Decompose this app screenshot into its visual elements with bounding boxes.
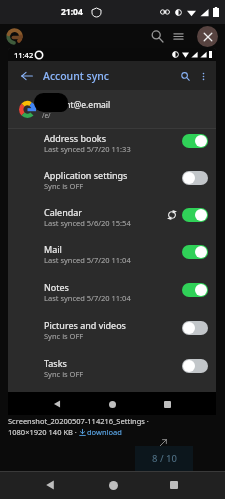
staticText: 1080×1920 140 KB · [8,427,79,437]
staticText: Last synced 5/7/20 11:33 [44,144,131,154]
button[interactable]: Menu [169,27,187,45]
button[interactable]: download [79,427,122,437]
staticText: Sync is OFF [44,331,84,341]
staticText: 11:42 [14,50,34,60]
staticText: Sync is OFF [44,181,84,191]
button[interactable]: Address books [8,129,216,166]
button[interactable]: Tasks [8,354,216,392]
button[interactable]: Sync off [182,359,208,373]
button[interactable]: Back [18,67,36,85]
staticText: Mail [44,243,62,255]
button[interactable]: 8 / 10 [135,446,193,471]
button[interactable]: Sync off [182,321,208,335]
button[interactable]: Sync off [182,171,208,185]
button[interactable]: account@e.email [8,90,216,128]
staticText: Notes [44,281,69,293]
staticText: Last synced 5/7/20 11:04 [44,255,131,265]
staticText: Calendar [44,206,82,218]
staticText: Screenshot_20200507-114216_Settings · [8,416,149,426]
staticText: Last synced 5/6/20 15:54 [44,218,131,228]
staticText: Sync is OFF [44,369,84,379]
staticText: download [87,427,122,437]
button[interactable]: Close tab [195,24,219,48]
button[interactable]: Mail [8,240,216,278]
staticText: Application settings [44,169,128,181]
button[interactable]: Sync on [182,245,208,259]
staticText: account@e.email [42,99,111,111]
button[interactable]: Sync on [182,283,208,297]
staticText: Last synced 5/7/20 11:04 [44,293,131,303]
button[interactable]: Sync on [182,134,208,148]
staticText: Address books [44,132,106,144]
staticText: /e/ [42,111,51,120]
button[interactable]: Back [40,475,60,495]
button[interactable]: Calendar [8,203,216,240]
button[interactable]: Back [49,396,65,412]
button[interactable]: Notes [8,278,216,316]
button[interactable]: Sync on [182,208,208,222]
button[interactable]: Search [148,27,166,45]
button[interactable]: Search [176,67,194,85]
staticText: 8 / 10 [152,452,177,465]
button[interactable]: Pictures and videos [8,316,216,354]
staticText: Tasks [44,357,67,369]
button[interactable]: Recents [159,396,175,412]
staticText: 21:04 [61,6,83,18]
staticText: Pictures and videos [44,319,126,331]
button[interactable]: Application settings [8,166,216,203]
button[interactable]: Recents [164,475,184,495]
button[interactable]: More options [194,67,212,85]
button[interactable]: Home [104,396,120,412]
button[interactable]: Home [103,475,123,495]
staticText: Account sync [43,69,109,83]
button[interactable]: Expand [157,438,168,449]
